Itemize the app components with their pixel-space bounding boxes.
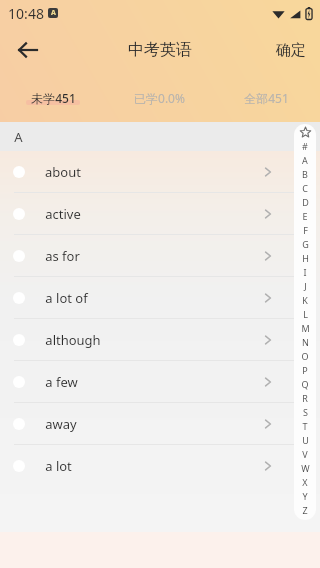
staticText: # (302, 140, 308, 152)
button[interactable]: a lot (0, 445, 320, 486)
staticText: away (45, 415, 77, 433)
staticText: F (303, 224, 308, 236)
staticText: A (302, 154, 308, 166)
staticText: B (302, 168, 308, 180)
staticText: O (301, 350, 309, 362)
staticText: K (302, 294, 308, 306)
staticText: although (45, 331, 101, 349)
staticText: X (302, 476, 308, 488)
staticText: A (14, 128, 23, 146)
staticText: N (302, 336, 309, 348)
staticText: U (302, 434, 309, 446)
staticText: L (303, 308, 308, 320)
staticText: 全部451 (244, 90, 289, 106)
staticText: T (302, 420, 308, 432)
staticText: C (302, 182, 308, 194)
button[interactable]: away (0, 403, 320, 444)
staticText: a lot (45, 457, 72, 475)
button[interactable]: a few (0, 361, 320, 402)
staticText: H (302, 252, 309, 264)
staticText: M (301, 322, 310, 334)
staticText: A (51, 8, 56, 18)
button[interactable]: Alphabet index (294, 124, 316, 520)
button[interactable]: 已学0.0% (106, 74, 213, 122)
button[interactable]: as for (0, 235, 320, 276)
staticText: E (302, 210, 308, 222)
button[interactable]: 全部451 (213, 74, 320, 122)
button[interactable]: although (0, 319, 320, 360)
staticText: as for (45, 247, 80, 265)
staticText: active (45, 205, 81, 223)
button[interactable]: 确定 (270, 33, 312, 68)
staticText: P (302, 364, 308, 376)
staticText: Z (302, 504, 308, 516)
staticText: 未学451 (31, 90, 76, 106)
staticText: G (302, 238, 309, 250)
staticText: S (303, 406, 308, 418)
staticText: about (45, 163, 81, 181)
staticText: I (303, 266, 307, 278)
staticText: 10:48 (8, 4, 44, 23)
staticText: Y (302, 490, 308, 502)
staticText: R (302, 392, 308, 404)
staticText: V (302, 448, 308, 460)
button[interactable]: a lot of (0, 277, 320, 318)
staticText: D (302, 196, 309, 208)
staticText: W (301, 462, 310, 474)
button[interactable]: 未学451 (0, 74, 106, 122)
button[interactable]: about (0, 151, 320, 192)
staticText: J (304, 280, 307, 292)
button[interactable]: active (0, 193, 320, 234)
staticText: a lot of (45, 289, 88, 307)
staticText: a few (45, 373, 78, 391)
staticText: 中考英语 (128, 40, 192, 60)
button[interactable]: Back (6, 28, 50, 72)
staticText: 已学0.0% (134, 90, 185, 106)
staticText: Q (301, 378, 309, 390)
staticText: 确定 (276, 41, 306, 60)
